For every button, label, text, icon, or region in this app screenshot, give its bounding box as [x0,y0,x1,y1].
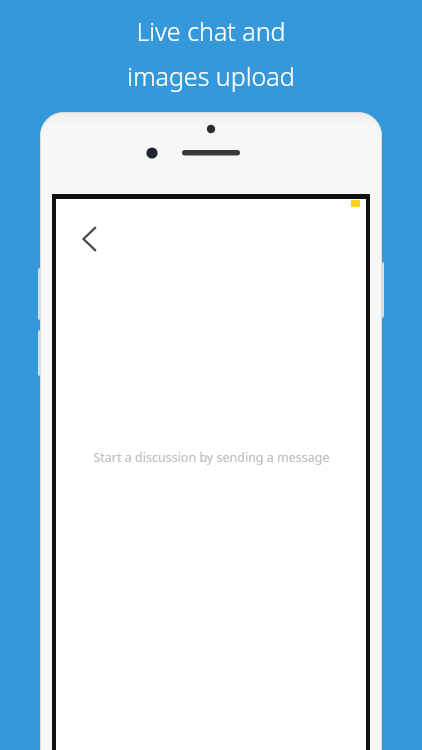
button[interactable]: Back [68,219,108,259]
staticText: images upload [127,59,295,93]
staticText: Start a discussion by sending a message [93,449,330,466]
staticText: Live chat and [136,14,286,48]
